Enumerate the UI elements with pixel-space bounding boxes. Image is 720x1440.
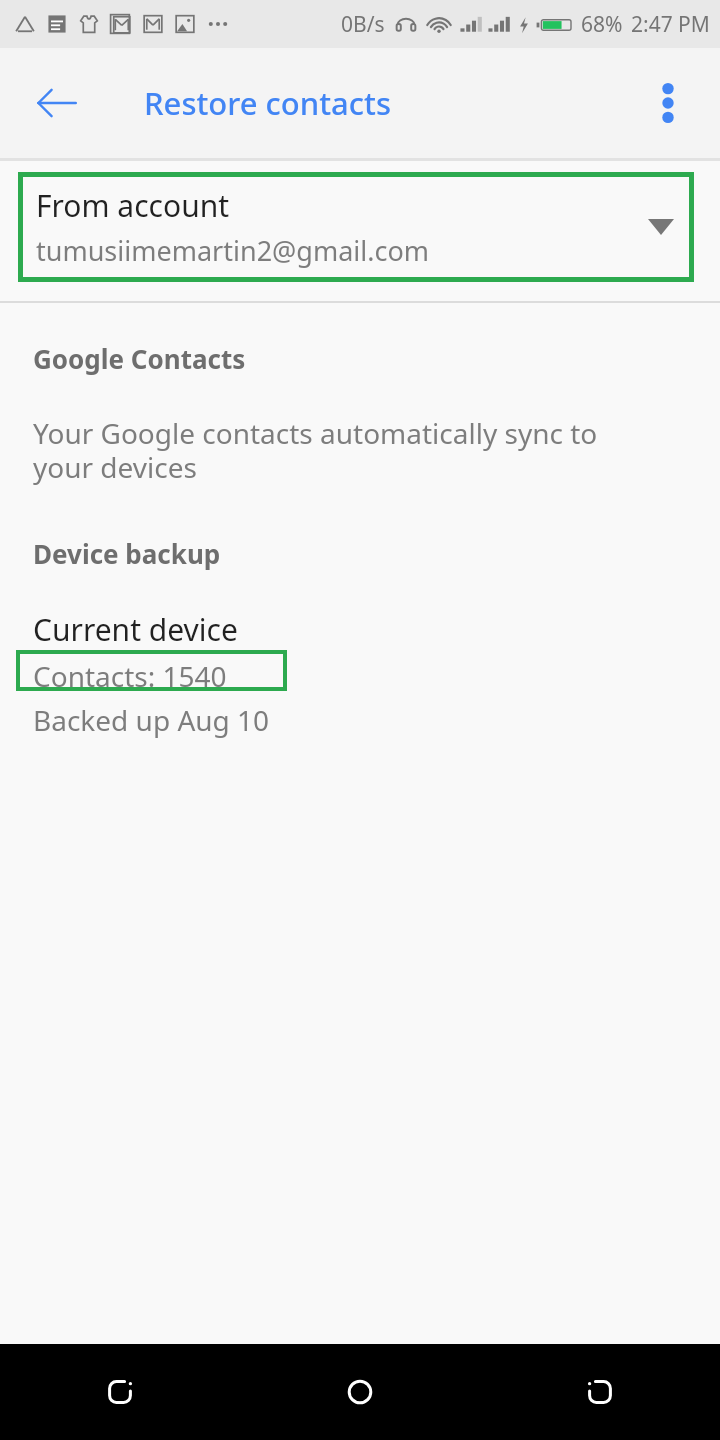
button[interactable]: Recents [480,1344,720,1440]
staticText: Current device [33,609,238,650]
staticText: 2:47 PM [631,10,710,39]
staticText: 0B/s [341,10,385,39]
button[interactable]: Back [20,67,92,139]
staticText: Your Google contacts automatically sync … [33,414,660,486]
button[interactable]: More options [632,67,704,139]
button[interactable]: From account [18,172,694,282]
staticText: Device backup [33,536,221,571]
button[interactable]: Back [0,1344,240,1440]
staticText: tumusiimemartin2@gmail.com [36,232,430,269]
staticText: Google Contacts [33,341,246,376]
staticText: Restore contacts [144,82,391,124]
staticText: Contacts: 1540 [33,657,227,695]
staticText: From account [36,185,230,226]
staticText: Backed up Aug 10 [33,701,270,739]
button[interactable]: Home [240,1344,480,1440]
staticText: 68% [581,10,623,39]
